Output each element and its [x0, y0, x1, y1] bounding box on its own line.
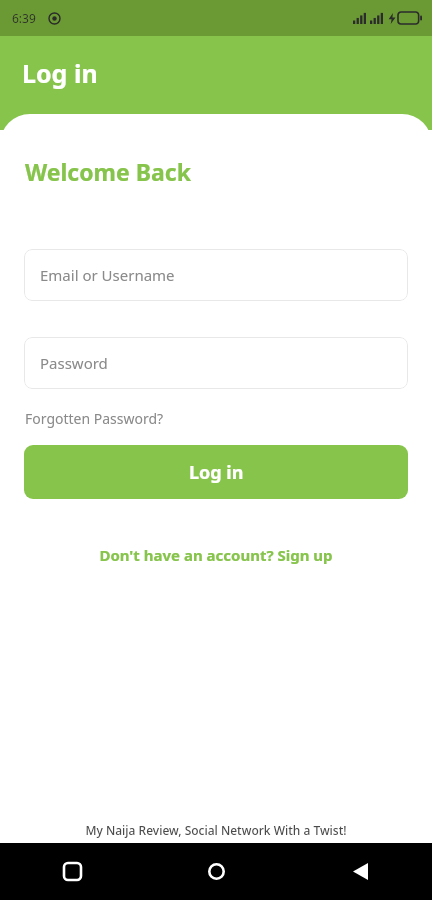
- staticText: Welcome Back: [25, 156, 191, 187]
- button[interactable]: Back: [288, 843, 432, 900]
- staticText: Log in: [22, 56, 98, 90]
- button[interactable]: Recent apps: [0, 843, 144, 900]
- staticText: Email or Username: [40, 265, 175, 285]
- button[interactable]: Password: [24, 337, 408, 389]
- staticText: Password: [40, 353, 108, 373]
- button[interactable]: Email or Username: [24, 249, 408, 301]
- button[interactable]: Log in: [24, 445, 408, 499]
- staticText: Don't have an account? Sign up: [99, 545, 333, 565]
- staticText: My Naija Review, Social Network With a T…: [85, 822, 347, 838]
- staticText: Log in: [189, 460, 244, 485]
- button[interactable]: Don't have an account? Sign up: [0, 545, 432, 565]
- staticText: 6:39: [12, 10, 36, 26]
- button[interactable]: Home: [144, 843, 288, 900]
- staticText: Forgotten Password?: [25, 409, 164, 428]
- button[interactable]: Forgotten Password?: [25, 409, 164, 428]
